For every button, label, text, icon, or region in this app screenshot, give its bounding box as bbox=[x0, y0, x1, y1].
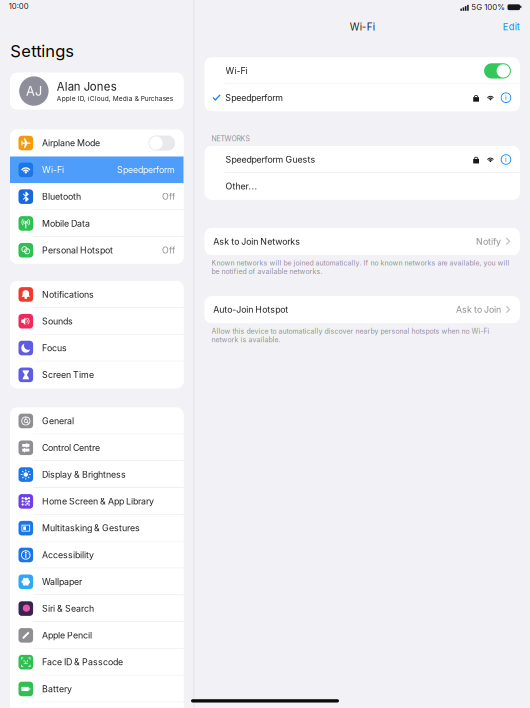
staticText: Face ID & Passcode bbox=[42, 657, 123, 667]
button[interactable]: General bbox=[10, 408, 183, 434]
staticText: Off bbox=[162, 245, 175, 255]
button[interactable]: Auto-Join Hotspot bbox=[205, 296, 520, 323]
staticText: i bbox=[505, 155, 507, 164]
button[interactable]: Home Screen & App Library bbox=[10, 488, 183, 515]
staticText: Wi-Fi bbox=[42, 164, 64, 175]
staticText: Bluetooth bbox=[42, 191, 81, 202]
staticText: General bbox=[42, 416, 74, 426]
button[interactable]: Ask to Join Networks bbox=[205, 228, 520, 255]
staticText: Speedperform bbox=[225, 92, 283, 103]
staticText: Ask to Join bbox=[456, 304, 501, 315]
staticText: Ask to Join Networks bbox=[213, 236, 300, 247]
staticText: Multitasking & Gestures bbox=[42, 523, 140, 533]
button[interactable]: Multitasking & Gestures bbox=[10, 515, 183, 542]
staticText: Apple Pencil bbox=[42, 630, 92, 641]
staticText: NETWORKS bbox=[212, 134, 250, 143]
button[interactable]: Bluetooth bbox=[10, 183, 183, 210]
button[interactable]: Face ID & Passcode bbox=[10, 649, 183, 676]
staticText: Home Screen & App Library bbox=[42, 496, 154, 507]
button[interactable]: Other... bbox=[205, 173, 520, 200]
button[interactable]: Speedperform bbox=[205, 84, 520, 111]
button[interactable]: AJ bbox=[10, 73, 183, 109]
staticText: Display & Brightness bbox=[42, 469, 126, 480]
button[interactable]: Screen Time bbox=[10, 361, 183, 388]
button[interactable]: Edit bbox=[503, 21, 530, 32]
button[interactable]: Apple Pencil bbox=[10, 622, 183, 649]
staticText: Wallpaper bbox=[42, 576, 82, 587]
button[interactable]: Control Centre bbox=[10, 434, 183, 461]
button[interactable]: Wi-Fi bbox=[10, 156, 183, 183]
staticText: Notifications bbox=[42, 289, 94, 300]
button[interactable]: Personal Hotspot bbox=[10, 237, 183, 264]
staticText: Edit bbox=[503, 21, 520, 32]
staticText: Siri & Search bbox=[42, 603, 94, 614]
staticText: Screen Time bbox=[42, 369, 94, 380]
staticText: Wi-Fi bbox=[350, 21, 375, 33]
button[interactable]: Accessibility bbox=[10, 542, 183, 568]
button[interactable]: Siri & Search bbox=[10, 595, 183, 622]
staticText: Sounds bbox=[42, 316, 73, 326]
button[interactable]: Wallpaper bbox=[10, 568, 183, 595]
staticText: Notify bbox=[476, 236, 501, 247]
button[interactable]: Speedperform Guests bbox=[205, 146, 520, 173]
button[interactable]: Focus bbox=[10, 335, 183, 361]
staticText: Known networks will be joined automatica… bbox=[212, 259, 510, 276]
button[interactable]: Airplane Mode bbox=[10, 130, 183, 156]
staticText: Speedperform Guests bbox=[226, 154, 316, 165]
button[interactable]: Notifications bbox=[10, 281, 183, 308]
staticText: Auto-Join Hotspot bbox=[213, 304, 288, 315]
staticText: Wi-Fi bbox=[226, 66, 248, 76]
staticText: 10:00 bbox=[9, 1, 29, 11]
button[interactable]: Display & Brightness bbox=[10, 461, 183, 488]
staticText: Battery bbox=[42, 684, 72, 694]
staticText: Focus bbox=[42, 343, 67, 353]
staticText: Other... bbox=[226, 181, 258, 192]
button[interactable]: Mobile Data bbox=[10, 210, 183, 237]
button[interactable]: Wi-Fi bbox=[205, 57, 520, 84]
button[interactable]: Sounds bbox=[10, 308, 183, 335]
staticText: Apple ID, iCloud, Media & Purchases bbox=[57, 95, 173, 102]
staticText: Settings bbox=[10, 41, 74, 61]
staticText: Personal Hotspot bbox=[42, 245, 113, 255]
staticText: Off bbox=[162, 191, 175, 202]
staticText: Accessibility bbox=[42, 550, 94, 560]
staticText: AJ bbox=[26, 83, 42, 99]
staticText: 5G 100% bbox=[471, 2, 505, 12]
staticText: Allow this device to automatically disco… bbox=[212, 327, 490, 344]
staticText: Alan Jones bbox=[57, 80, 117, 93]
staticText: Speedperform bbox=[117, 164, 175, 175]
button[interactable]: Battery bbox=[10, 676, 183, 702]
staticText: Airplane Mode bbox=[42, 138, 100, 148]
staticText: Control Centre bbox=[42, 442, 100, 453]
staticText: i bbox=[505, 93, 507, 102]
staticText: Mobile Data bbox=[42, 218, 90, 229]
